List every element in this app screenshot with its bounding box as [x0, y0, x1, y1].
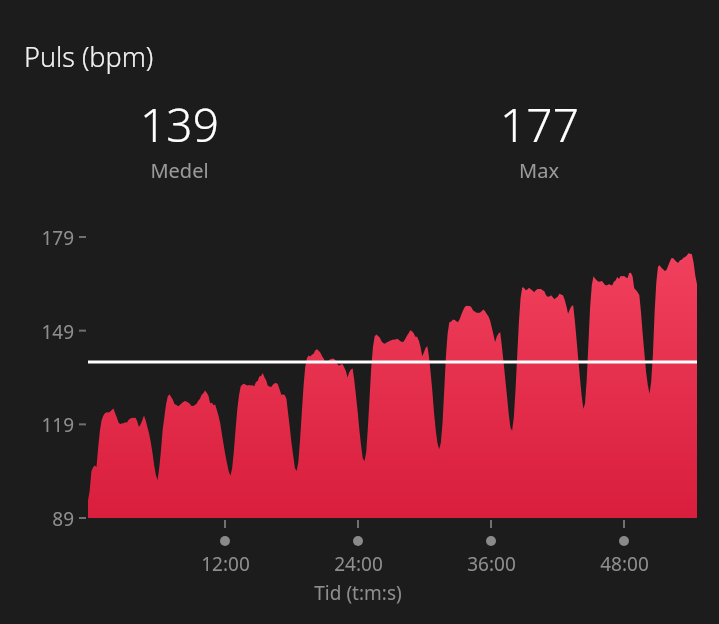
staticText: Max: [519, 157, 559, 184]
staticText: 24:00: [334, 551, 383, 577]
button[interactable]: 177: [359, 93, 719, 184]
staticText: 89: [52, 506, 74, 532]
staticText: 177: [500, 93, 579, 156]
staticText: 119: [41, 412, 74, 438]
staticText: Puls (bpm): [24, 38, 154, 75]
button[interactable]: Heart rate chart: [0, 0, 719, 624]
staticText: 139: [140, 93, 219, 156]
button[interactable]: 139: [0, 93, 359, 184]
staticText: 48:00: [600, 551, 649, 577]
staticText: Tid (t:m:s): [314, 580, 402, 606]
staticText: 149: [41, 319, 74, 345]
staticText: 36:00: [467, 551, 516, 577]
staticText: 12:00: [201, 551, 250, 577]
staticText: Medel: [150, 157, 209, 184]
staticText: 179: [41, 225, 74, 251]
